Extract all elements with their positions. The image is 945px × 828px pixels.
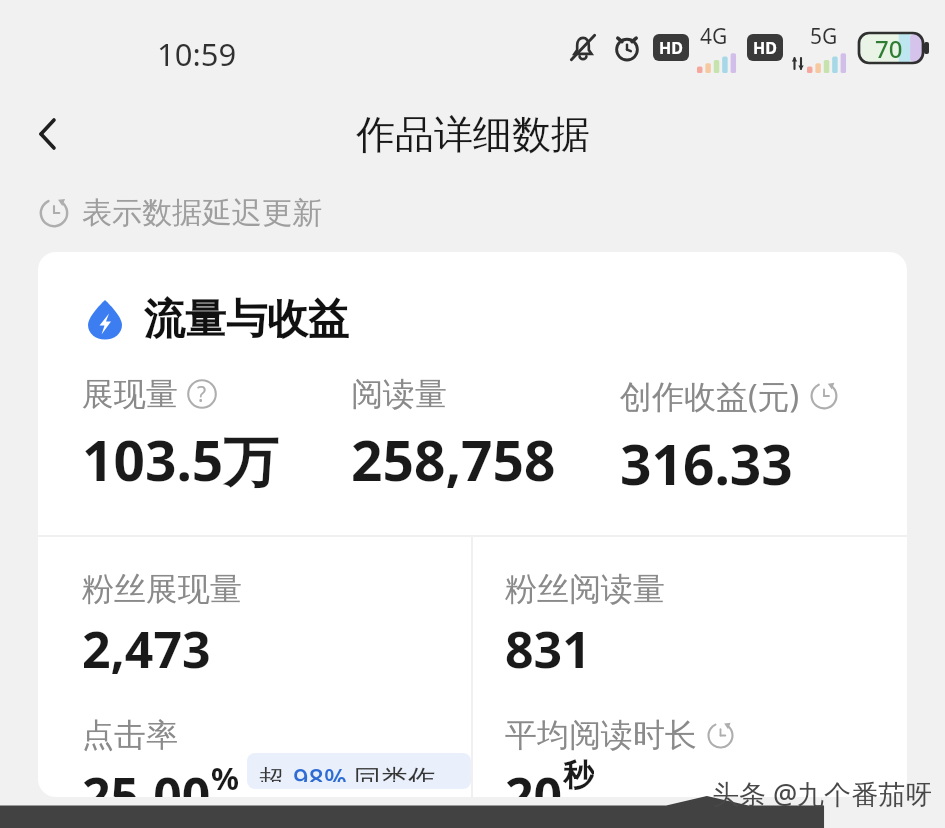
button[interactable]: 点击率	[82, 715, 471, 797]
staticText: 831	[505, 615, 591, 683]
staticText: 2,473	[82, 615, 211, 683]
button[interactable]: 粉丝展现量	[82, 569, 242, 683]
staticText: 流量与收益	[144, 294, 349, 346]
staticText: 4G	[700, 22, 728, 51]
staticText: 98%	[293, 760, 347, 782]
button[interactable]: 表示数据延迟更新	[38, 194, 322, 232]
staticText: 作品详细数据	[356, 110, 590, 159]
staticText: 创作收益(元)	[620, 374, 800, 418]
other: Silent	[565, 30, 601, 66]
staticText: 粉丝阅读量	[505, 569, 665, 609]
button[interactable]: 展现量	[82, 374, 351, 497]
button[interactable]: 创作收益(元)	[620, 374, 895, 501]
staticText: ?	[197, 380, 207, 409]
staticText: 20	[505, 761, 563, 797]
staticText: 316.33	[620, 426, 793, 501]
staticText: HD	[753, 37, 777, 59]
button[interactable]: 平均阅读时长	[505, 715, 735, 797]
staticText: 5G	[810, 22, 838, 51]
staticText: HD	[659, 37, 683, 59]
staticText: 10:59	[157, 33, 237, 75]
staticText: 点击率	[82, 715, 178, 755]
staticText: 头条 @九个番茄呀	[712, 775, 933, 812]
staticText: 103.5万	[82, 422, 279, 497]
staticText: 秒	[563, 756, 594, 792]
button[interactable]: 流量与收益	[82, 294, 349, 346]
staticText: 展现量	[82, 374, 178, 414]
staticText: %	[211, 757, 239, 793]
button[interactable]: Back	[16, 101, 82, 167]
staticText: 平均阅读时长	[505, 715, 697, 755]
staticText: 70	[875, 32, 903, 65]
staticText: 粉丝展现量	[82, 569, 242, 609]
staticText: 25.00	[82, 761, 211, 797]
button[interactable]: 阅读量	[351, 374, 620, 497]
staticText: 阅读量	[351, 374, 447, 414]
other: Alarm	[609, 30, 645, 66]
button[interactable]: 粉丝阅读量	[505, 569, 665, 683]
staticText: 超	[258, 760, 293, 782]
staticText: 258,758	[351, 422, 556, 497]
staticText: 表示数据延迟更新	[82, 194, 322, 232]
staticText: 同类作品	[347, 760, 460, 782]
